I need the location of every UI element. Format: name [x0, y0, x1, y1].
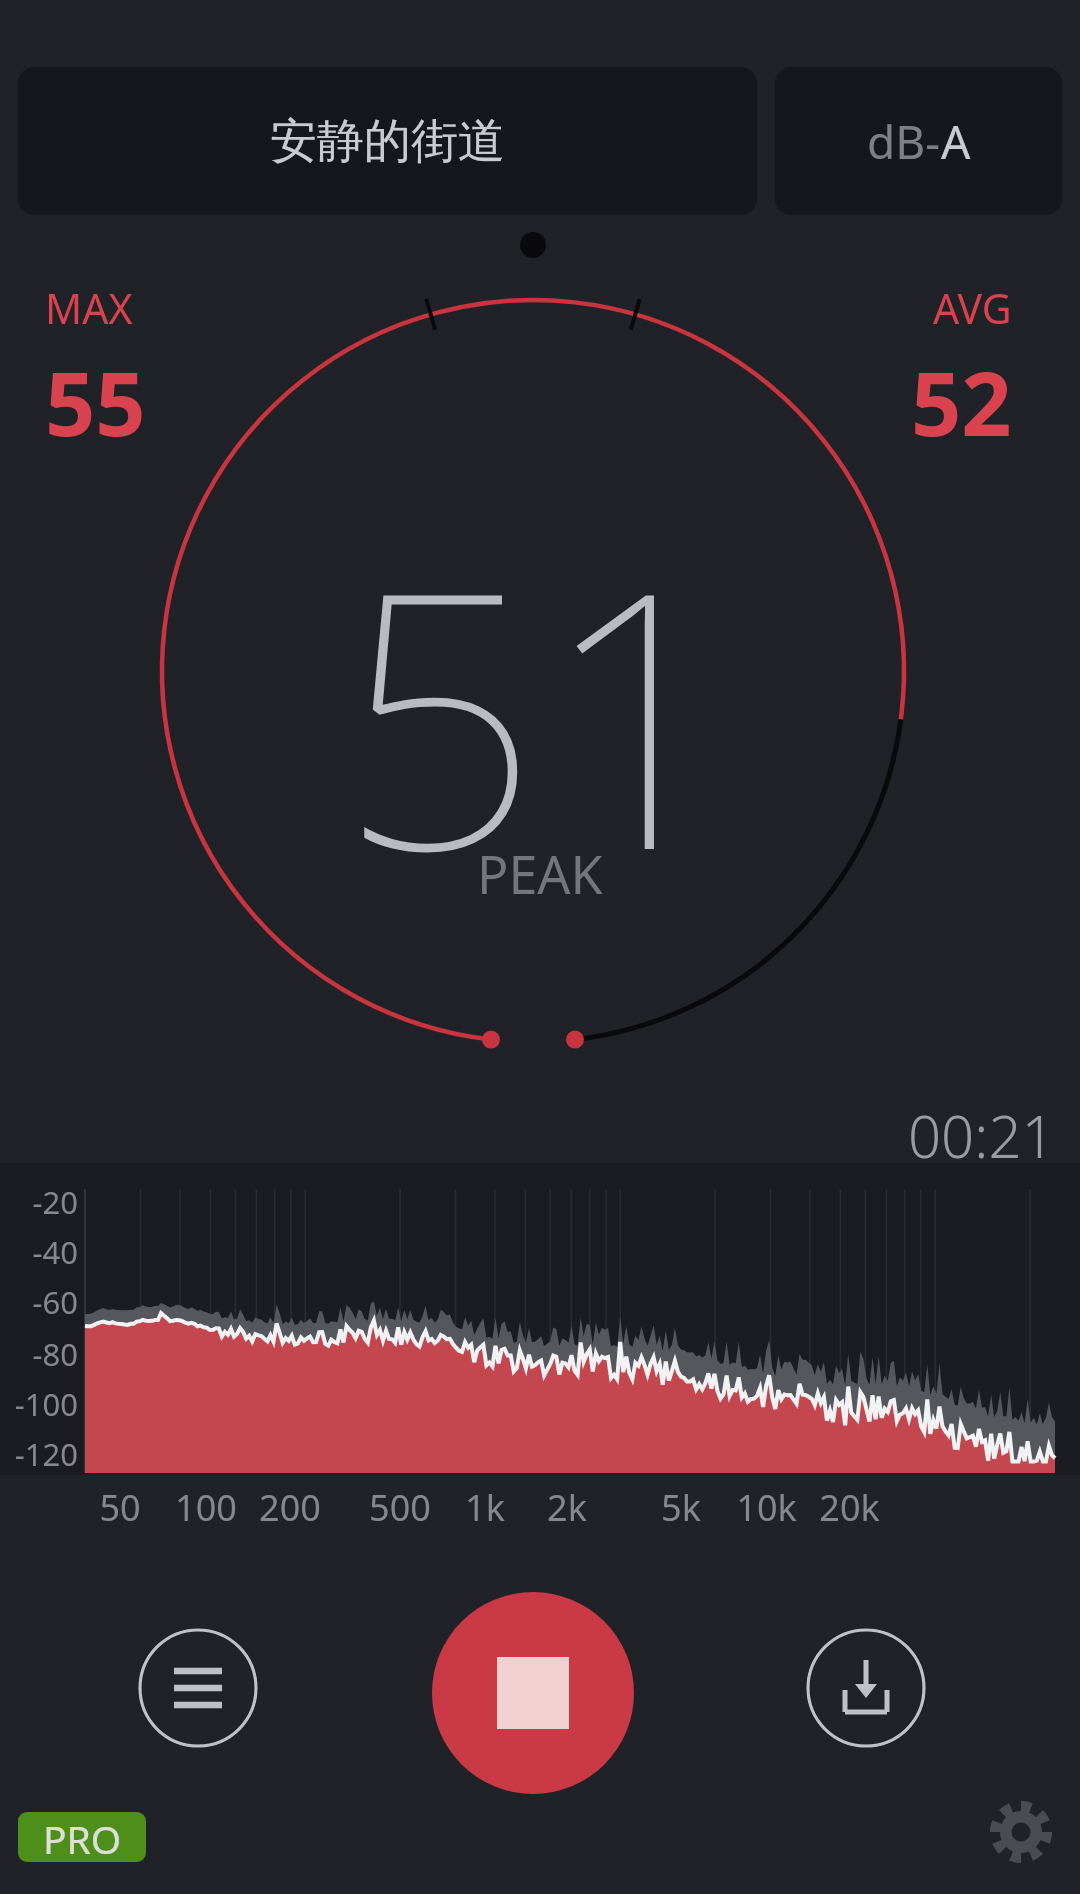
staticText: 安静的街道	[270, 112, 505, 171]
button[interactable]: Menu	[138, 1628, 258, 1748]
staticText: A	[941, 110, 971, 173]
staticText: 51	[338, 470, 743, 954]
button[interactable]: dB-	[775, 67, 1062, 215]
staticText: 100	[175, 1483, 237, 1532]
staticText: 2k	[547, 1483, 587, 1532]
staticText: 500	[369, 1483, 431, 1532]
button[interactable]: PRO	[18, 1812, 146, 1862]
staticText: dB-	[867, 110, 941, 173]
staticText: 10k	[736, 1483, 797, 1532]
button[interactable]: 安静的街道	[18, 67, 757, 215]
staticText: -40	[32, 1231, 78, 1273]
staticText: -120	[14, 1433, 78, 1475]
staticText: 200	[259, 1483, 321, 1532]
staticText: MAX	[45, 280, 133, 336]
staticText: 20k	[819, 1483, 880, 1532]
button[interactable]: Stop recording	[432, 1592, 634, 1794]
staticText: AVG	[933, 280, 1012, 336]
staticText: PEAK	[477, 838, 603, 909]
staticText: 50	[99, 1483, 141, 1532]
button[interactable]: Settings	[985, 1796, 1057, 1868]
staticText: 1k	[465, 1483, 505, 1532]
staticText: -60	[32, 1281, 78, 1323]
staticText: -80	[32, 1333, 78, 1375]
staticText: 52	[911, 342, 1012, 462]
staticText: 55	[45, 342, 146, 462]
staticText: PRO	[43, 1812, 122, 1862]
staticText: 5k	[661, 1483, 701, 1532]
staticText: 00:21	[908, 1096, 1055, 1175]
staticText: -20	[32, 1181, 78, 1223]
button[interactable]: Save recording	[806, 1628, 926, 1748]
staticText: -100	[14, 1383, 78, 1425]
